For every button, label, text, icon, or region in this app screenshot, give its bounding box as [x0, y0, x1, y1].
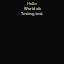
staticText: World ab: [24, 6, 41, 11]
staticText: Hello: [27, 1, 37, 6]
staticText: Testing text: [21, 11, 43, 16]
